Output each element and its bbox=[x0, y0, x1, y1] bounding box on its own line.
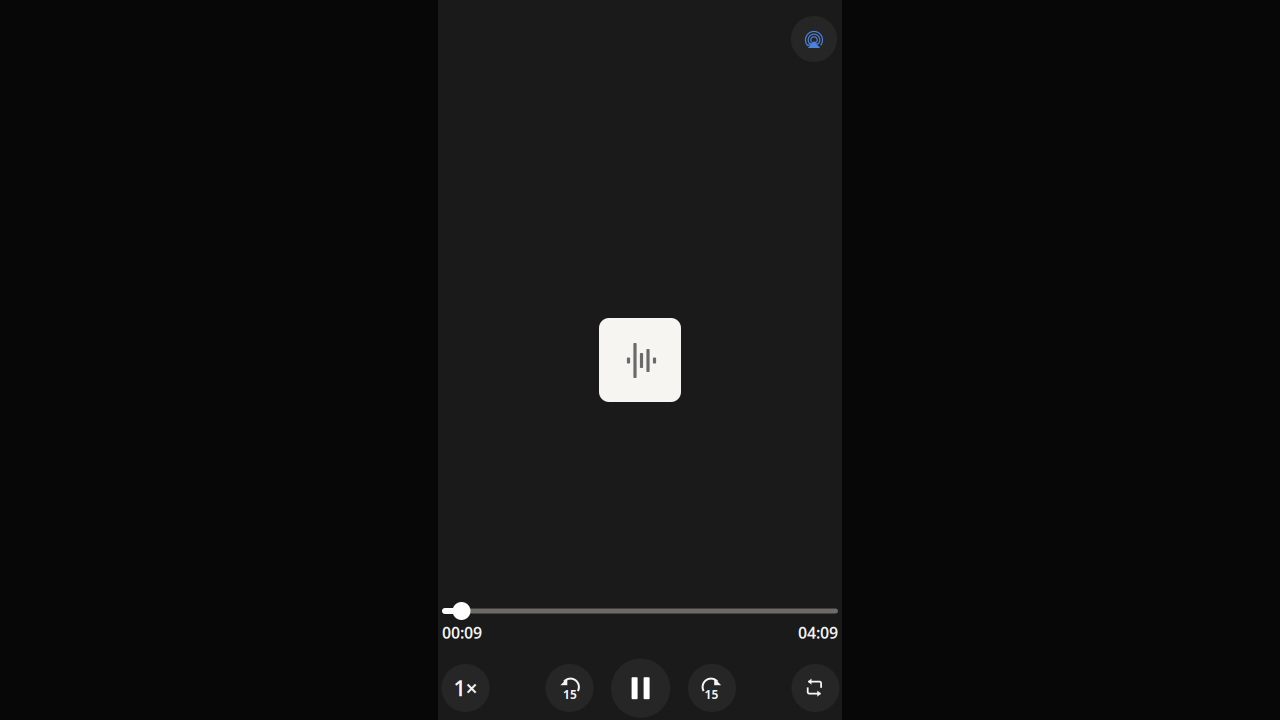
button[interactable]: Back 15 seconds bbox=[545, 664, 593, 712]
button[interactable]: Forward 15 seconds bbox=[688, 664, 736, 712]
staticText: 15 bbox=[563, 686, 577, 702]
staticText: 04:09 bbox=[798, 622, 838, 643]
button[interactable]: Repeat bbox=[791, 664, 839, 712]
staticText: 1× bbox=[453, 674, 477, 702]
button[interactable]: Pause bbox=[611, 659, 670, 718]
button[interactable]: Playback speed bbox=[441, 664, 489, 712]
button[interactable]: AirPlay bbox=[791, 16, 837, 62]
staticText: 15 bbox=[705, 686, 719, 702]
staticText: 00:09 bbox=[442, 622, 482, 643]
